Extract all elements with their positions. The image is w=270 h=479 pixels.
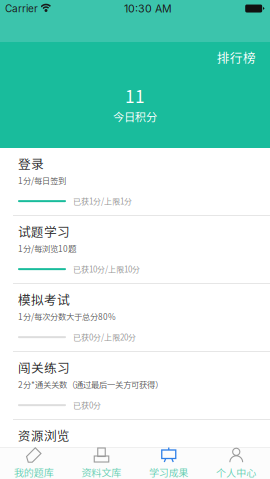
staticText: 已获10分/上限10分	[73, 263, 140, 275]
button[interactable]: 闯关练习	[0, 352, 270, 420]
button[interactable]: 资料文库	[67, 447, 135, 479]
staticText: 资料文库	[81, 465, 121, 479]
staticText: Carrier	[5, 2, 38, 15]
button[interactable]: 个人中心	[202, 447, 270, 479]
staticText: 已获0分/上限20分	[73, 331, 136, 343]
button[interactable]: 排行榜	[210, 42, 263, 72]
staticText: 登录	[18, 154, 44, 172]
staticText: 2分*通关关数（通过最后一关方可获得）	[18, 378, 163, 390]
staticText: 闯关练习	[18, 358, 70, 376]
button[interactable]: 学习成果	[135, 447, 202, 479]
button[interactable]: 我的题库	[0, 447, 67, 479]
staticText: 试题学习	[18, 222, 70, 240]
button[interactable]: 资源浏览	[0, 420, 270, 479]
button[interactable]: 登录	[0, 148, 270, 216]
staticText: 1分/每浏览10个资源	[18, 446, 92, 458]
staticText: 已获0分	[73, 399, 101, 411]
staticText: 已获1分/上限1分	[73, 195, 132, 207]
button[interactable]: 试题学习	[0, 216, 270, 284]
staticText: 已获0分/上限10分	[73, 467, 136, 479]
staticText: 1分/每次分数大于总分80%	[18, 310, 116, 322]
staticText: 资源浏览	[18, 426, 70, 444]
staticText: 排行榜	[217, 48, 256, 66]
staticText: 学习成果	[149, 465, 189, 479]
staticText: 1分/每日签到	[18, 174, 66, 186]
staticText: 1分/每浏览10题	[18, 242, 76, 254]
staticText: 个人中心	[216, 465, 256, 479]
staticText: 11	[125, 83, 145, 108]
staticText: 10:30 AM	[124, 2, 172, 15]
staticText: 我的题库	[14, 465, 54, 479]
button[interactable]: 模拟考试	[0, 284, 270, 352]
staticText: 今日积分	[113, 108, 157, 124]
staticText: 模拟考试	[18, 290, 70, 308]
